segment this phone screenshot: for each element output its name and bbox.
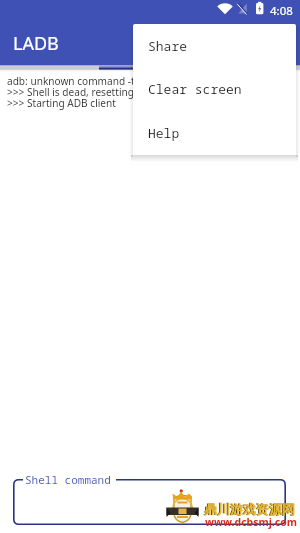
staticText: Shell command (25, 472, 111, 487)
staticText: Clear screen (148, 80, 242, 98)
button[interactable]: Help (133, 111, 296, 155)
staticText: 4:08 (270, 3, 293, 19)
staticText: www.dcbsmj.com (205, 515, 297, 529)
staticText: Share (148, 37, 188, 55)
staticText: 鼎川游戏资源网 (203, 501, 294, 517)
button[interactable]: Clear screen (133, 67, 296, 111)
staticText: LADB (13, 31, 59, 56)
staticText: adb: unknown command -t >>> Shell is dea… (7, 74, 135, 110)
staticText: Help (148, 124, 180, 142)
staticText: 鼎川游戏资源网 (204, 501, 295, 517)
button[interactable]: Share (133, 24, 296, 67)
button[interactable]: Shell command (13, 479, 286, 525)
